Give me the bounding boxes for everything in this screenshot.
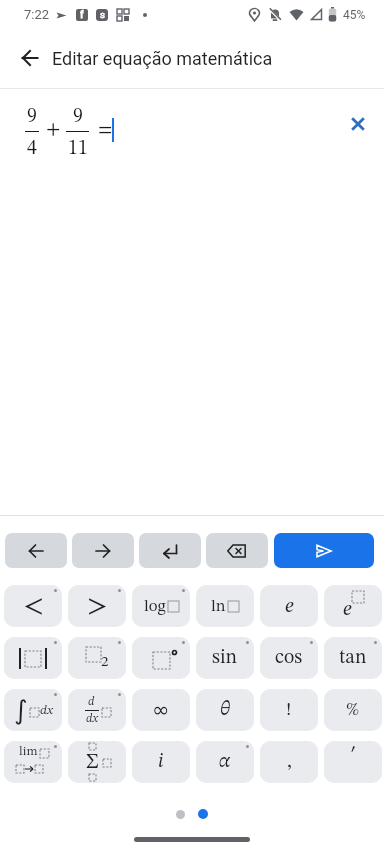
staticText: θ bbox=[220, 700, 231, 720]
button[interactable]: , bbox=[260, 741, 318, 783]
staticText: 45% bbox=[343, 8, 366, 22]
staticText: tan bbox=[339, 648, 367, 668]
button[interactable]: tan bbox=[324, 637, 382, 679]
button[interactable]: lim bbox=[4, 741, 62, 783]
staticText: ∫ bbox=[14, 695, 28, 725]
staticText: i bbox=[158, 752, 164, 772]
button[interactable]: > bbox=[68, 585, 126, 627]
button[interactable]: α bbox=[196, 741, 254, 783]
staticText: sin bbox=[212, 648, 238, 668]
staticText: e bbox=[285, 596, 294, 617]
button[interactable] bbox=[5, 533, 67, 568]
button[interactable]: Σ bbox=[68, 741, 126, 783]
staticText: Editar equação matemática bbox=[52, 48, 273, 69]
staticText: Σ bbox=[86, 752, 99, 773]
staticText: d bbox=[88, 696, 95, 708]
staticText: lim bbox=[19, 745, 38, 758]
button[interactable] bbox=[274, 533, 374, 568]
button[interactable] bbox=[72, 533, 134, 568]
staticText: 7:22 bbox=[24, 7, 50, 22]
staticText: dx bbox=[86, 713, 98, 725]
staticText: + bbox=[46, 120, 61, 140]
button[interactable] bbox=[351, 117, 365, 131]
staticText: ′ bbox=[350, 744, 357, 765]
button[interactable]: θ bbox=[196, 689, 254, 731]
button[interactable]: ′ bbox=[324, 741, 382, 783]
staticText: , bbox=[287, 752, 292, 772]
button[interactable] bbox=[139, 533, 201, 568]
button[interactable] bbox=[20, 48, 40, 68]
staticText: log bbox=[144, 598, 166, 615]
staticText: dx bbox=[40, 704, 53, 717]
staticText: < bbox=[23, 592, 44, 621]
button[interactable]: d bbox=[68, 689, 126, 731]
button[interactable]: cos bbox=[260, 637, 318, 679]
button[interactable] bbox=[4, 637, 62, 679]
staticText: > bbox=[87, 592, 108, 621]
staticText: 9 bbox=[73, 107, 83, 127]
button[interactable]: ! bbox=[260, 689, 318, 731]
button[interactable] bbox=[206, 533, 268, 568]
button[interactable] bbox=[198, 809, 208, 819]
button[interactable]: ∞ bbox=[132, 689, 190, 731]
button[interactable]: < bbox=[4, 585, 62, 627]
staticText: 11 bbox=[68, 139, 88, 159]
button[interactable]: i bbox=[132, 741, 190, 783]
staticText: α bbox=[219, 752, 231, 772]
staticText: f bbox=[80, 9, 84, 21]
staticText: % bbox=[346, 701, 360, 720]
button[interactable]: log bbox=[132, 585, 190, 627]
button[interactable]: ∫ bbox=[4, 689, 62, 731]
staticText: = bbox=[98, 120, 113, 140]
staticText: ! bbox=[286, 701, 292, 720]
staticText: 4 bbox=[27, 139, 37, 159]
staticText: ∞ bbox=[152, 698, 170, 722]
button[interactable]: sin bbox=[196, 637, 254, 679]
button[interactable]: 2 bbox=[68, 637, 126, 679]
button[interactable] bbox=[132, 637, 190, 679]
staticText: cos bbox=[275, 648, 303, 668]
button[interactable]: ln bbox=[196, 585, 254, 627]
staticText: 2 bbox=[101, 655, 109, 670]
button[interactable]: e bbox=[260, 585, 318, 627]
staticText: 9 bbox=[27, 107, 37, 127]
button[interactable]: e bbox=[324, 585, 382, 627]
staticText: S bbox=[100, 11, 105, 20]
staticText: ln bbox=[211, 598, 226, 615]
button[interactable]: % bbox=[324, 689, 382, 731]
staticText: e bbox=[343, 599, 352, 620]
